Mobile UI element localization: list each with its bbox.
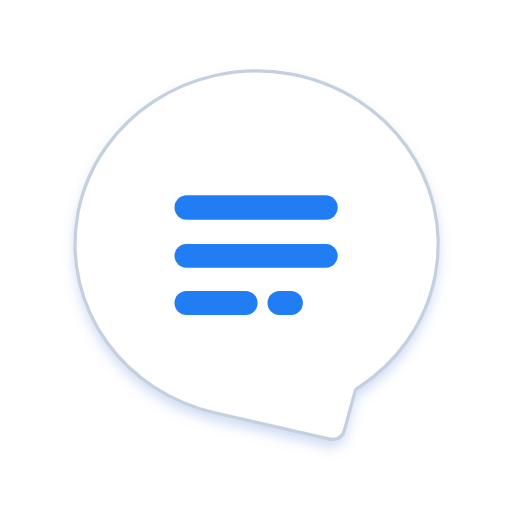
other: Messages app logo [0,0,512,512]
